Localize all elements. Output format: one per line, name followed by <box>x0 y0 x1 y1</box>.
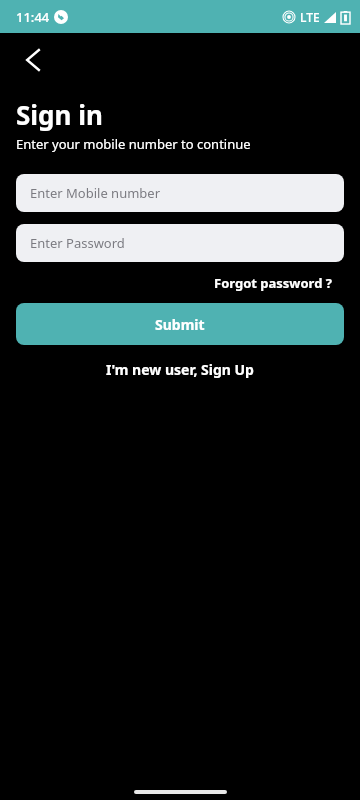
staticText: Enter your mobile number to continue <box>16 135 251 153</box>
staticText: Enter Mobile number <box>30 184 161 202</box>
button[interactable]: I'm new user, Sign Up <box>98 358 262 381</box>
button[interactable]: Enter Password <box>16 224 344 262</box>
button[interactable]: Enter Mobile number <box>16 174 344 212</box>
button[interactable]: Back <box>18 45 48 75</box>
staticText: Submit <box>155 315 205 334</box>
staticText: LTE <box>300 9 320 25</box>
button[interactable]: Forgot password ? <box>214 272 332 294</box>
staticText: 11:44 <box>16 8 50 26</box>
button[interactable]: Submit <box>16 303 344 345</box>
staticText: Forgot password ? <box>214 274 332 292</box>
staticText: I'm new user, Sign Up <box>106 360 254 379</box>
staticText: Enter Password <box>30 234 125 252</box>
staticText: Sign in <box>16 97 103 132</box>
